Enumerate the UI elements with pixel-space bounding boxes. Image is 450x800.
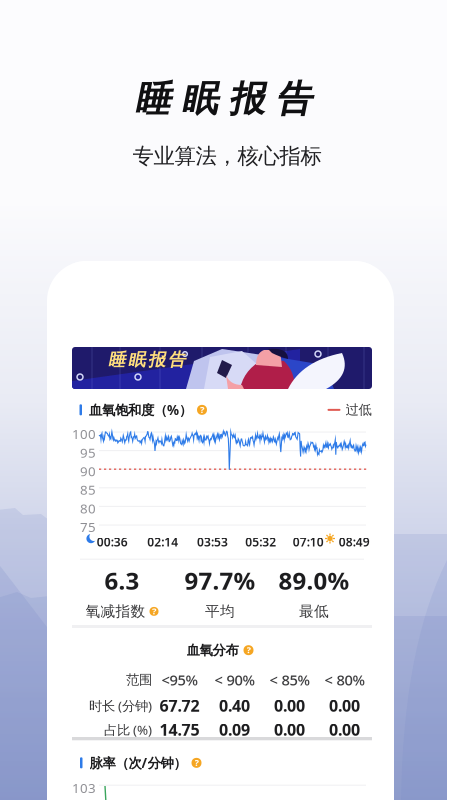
staticText: 100 bbox=[72, 425, 96, 443]
staticText: ? bbox=[152, 605, 156, 617]
staticText: 05:32 bbox=[245, 534, 276, 550]
staticText: 75 bbox=[80, 518, 96, 536]
staticText: 氧减指数 bbox=[85, 602, 145, 620]
staticText: 85 bbox=[80, 481, 96, 498]
staticText: 0.00 bbox=[329, 719, 360, 740]
staticText: 平均 bbox=[205, 602, 235, 620]
staticText: 专业算法，核心指标 bbox=[132, 143, 321, 169]
staticText: <95% bbox=[161, 670, 197, 689]
staticText: 脉率（次/分钟） bbox=[89, 754, 186, 772]
staticText: 80 bbox=[80, 499, 96, 517]
staticText: < 80% bbox=[324, 670, 364, 689]
staticText: 0.40 bbox=[219, 695, 250, 716]
staticText: 08:49 bbox=[339, 534, 370, 550]
staticText: 14.75 bbox=[159, 719, 199, 740]
staticText: 07:10 bbox=[293, 534, 324, 550]
staticText: 89.0% bbox=[278, 564, 349, 596]
staticText: 00:36 bbox=[97, 534, 128, 550]
staticText: 97.7% bbox=[184, 564, 255, 596]
staticText: 95 bbox=[80, 444, 96, 461]
staticText: 67.72 bbox=[159, 695, 199, 716]
staticText: 血氧分布 bbox=[186, 642, 238, 658]
staticText: 占比 (%) bbox=[104, 721, 152, 738]
staticText: < 85% bbox=[269, 670, 309, 689]
staticText: ? bbox=[194, 756, 198, 769]
staticText: 最低 bbox=[299, 602, 329, 620]
staticText: 0.09 bbox=[219, 719, 250, 740]
staticText: 6.3 bbox=[104, 564, 139, 596]
staticText: ? bbox=[200, 403, 204, 416]
staticText: 过低 bbox=[345, 402, 371, 418]
staticText: 范围 bbox=[126, 672, 152, 688]
staticText: 03:53 bbox=[197, 534, 228, 550]
staticText: 睡眠报告 bbox=[134, 77, 311, 121]
staticText: 时长 (分钟) bbox=[89, 697, 152, 714]
staticText: ? bbox=[246, 643, 250, 656]
staticText: 0.00 bbox=[274, 695, 305, 716]
staticText: 90 bbox=[80, 462, 96, 480]
staticText: 0.00 bbox=[329, 695, 360, 716]
staticText: 02:14 bbox=[147, 534, 178, 550]
staticText: 103 bbox=[72, 779, 96, 797]
staticText: 0.00 bbox=[274, 719, 305, 740]
staticText: 血氧饱和度（%） bbox=[89, 401, 192, 419]
staticText: 睡眠报告 bbox=[108, 349, 185, 370]
staticText: < 90% bbox=[214, 670, 254, 689]
